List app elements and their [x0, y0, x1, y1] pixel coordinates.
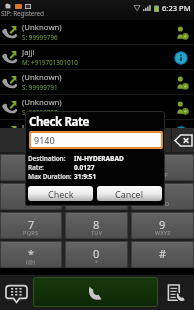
button[interactable]: * — [0, 241, 62, 268]
staticText: PQRS — [23, 229, 39, 236]
staticText: Max Duration: — [28, 172, 74, 181]
staticText: 5 — [93, 188, 100, 203]
button[interactable]: Check — [28, 186, 93, 201]
button[interactable]: Backspace — [172, 128, 194, 152]
staticText: M: +919701301010 — [22, 133, 78, 142]
staticText: 31:9:51 — [74, 172, 97, 181]
button[interactable]: Call log — [158, 275, 194, 310]
staticText: 6:23 PM — [162, 3, 191, 13]
button[interactable]: (Unknown) — [0, 95, 194, 120]
staticText: (Unknown) — [22, 72, 62, 83]
staticText: MNO — [155, 200, 170, 207]
button[interactable]: (Unknown) — [0, 70, 194, 95]
staticText: + — [95, 258, 99, 265]
staticText: M: +919701301010 — [22, 58, 78, 67]
staticText: Rate: — [28, 163, 74, 172]
staticText: 7 — [28, 217, 35, 232]
staticText: ABC — [91, 171, 103, 178]
staticText: Check — [48, 188, 74, 200]
staticText: GHI — [26, 200, 37, 207]
staticText: 0 — [93, 246, 100, 261]
staticText: 4 — [28, 188, 35, 203]
staticText: TUV — [91, 229, 103, 236]
staticText: 6 — [159, 188, 166, 203]
button[interactable]: Add contact — [168, 95, 194, 120]
staticText: Check Rate — [29, 114, 90, 130]
staticText: 1 — [28, 159, 35, 174]
staticText: 8 — [93, 217, 100, 232]
staticText: JKL — [92, 200, 101, 207]
staticText: WXYZ — [155, 229, 171, 236]
staticText: 9140 — [34, 134, 55, 146]
button[interactable]: Dialpad — [0, 275, 33, 310]
button[interactable]: Call details — [168, 120, 194, 145]
button[interactable]: # — [131, 241, 194, 268]
staticText: 2 — [93, 159, 100, 174]
button[interactable]: 6 — [131, 183, 194, 210]
staticText: DEF — [157, 171, 168, 178]
button[interactable]: Add contact — [168, 70, 194, 95]
staticText: S: 99999792 — [22, 108, 58, 117]
button[interactable]: 0 — [65, 241, 128, 268]
staticText: S: 99999796 — [22, 33, 58, 42]
button[interactable]: 5 — [65, 183, 128, 210]
button[interactable]: 8 — [65, 212, 128, 239]
button[interactable]: (Unknown) — [0, 20, 194, 45]
staticText: Jajji — [22, 122, 35, 133]
button[interactable]: Call — [33, 277, 158, 307]
staticText: (@) — [26, 258, 36, 265]
staticText: IN-HYDERABAD — [74, 154, 124, 163]
staticText: * — [28, 246, 35, 261]
button[interactable]: 9 — [131, 212, 194, 239]
button[interactable]: Jajji — [0, 120, 194, 145]
button[interactable]: 2 — [65, 154, 128, 181]
staticText: Destination: — [28, 154, 74, 163]
button[interactable]: 3 — [131, 154, 194, 181]
staticText: (Unknown) — [22, 97, 62, 108]
staticText: 3 — [159, 159, 166, 174]
staticText: SIP: Registered — [1, 9, 44, 18]
button[interactable]: Call details — [168, 45, 194, 70]
button[interactable]: 4 — [0, 183, 62, 210]
staticText: (Unknown) — [22, 22, 62, 33]
button[interactable]: Jajji — [0, 45, 194, 70]
staticText: Jajji — [22, 47, 35, 58]
button[interactable]: Add contact — [168, 20, 194, 45]
staticText: 9 — [159, 217, 166, 232]
staticText: S: 99999791 — [22, 83, 58, 92]
button[interactable]: 1 — [0, 154, 62, 181]
staticText: # — [159, 246, 167, 261]
button[interactable]: 7 — [0, 212, 62, 239]
staticText: Cancel — [115, 188, 144, 200]
staticText: 0.0127 — [74, 163, 95, 172]
button[interactable]: Cancel — [97, 186, 162, 201]
